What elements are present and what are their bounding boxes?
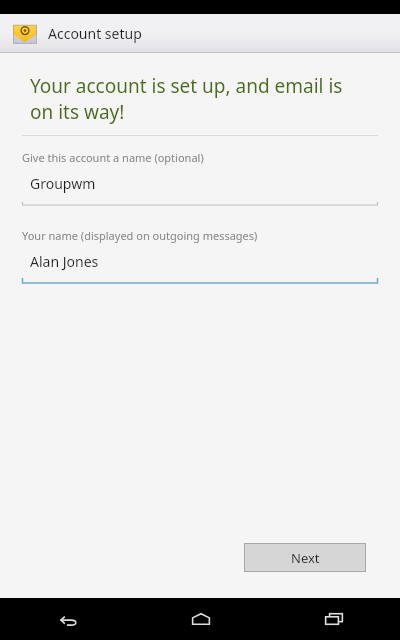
button[interactable]: Give this account a name (optional) [0,150,400,206]
staticText: Your account is set up, and email is on … [30,73,370,125]
staticText: Alan Jones [30,252,99,271]
staticText: Next [291,549,320,567]
button[interactable]: Home [134,598,267,640]
button[interactable]: Your name (displayed on outgoing message… [0,228,400,284]
staticText: Groupwm [30,174,96,193]
button[interactable]: Next [245,544,365,571]
staticText: Give this account a name (optional) [22,150,204,165]
button[interactable]: Recent apps [267,598,400,640]
button[interactable]: Account setup [0,14,400,53]
staticText: Your name (displayed on outgoing message… [22,228,258,243]
staticText: Account setup [48,24,142,43]
button[interactable]: Back [0,598,134,640]
